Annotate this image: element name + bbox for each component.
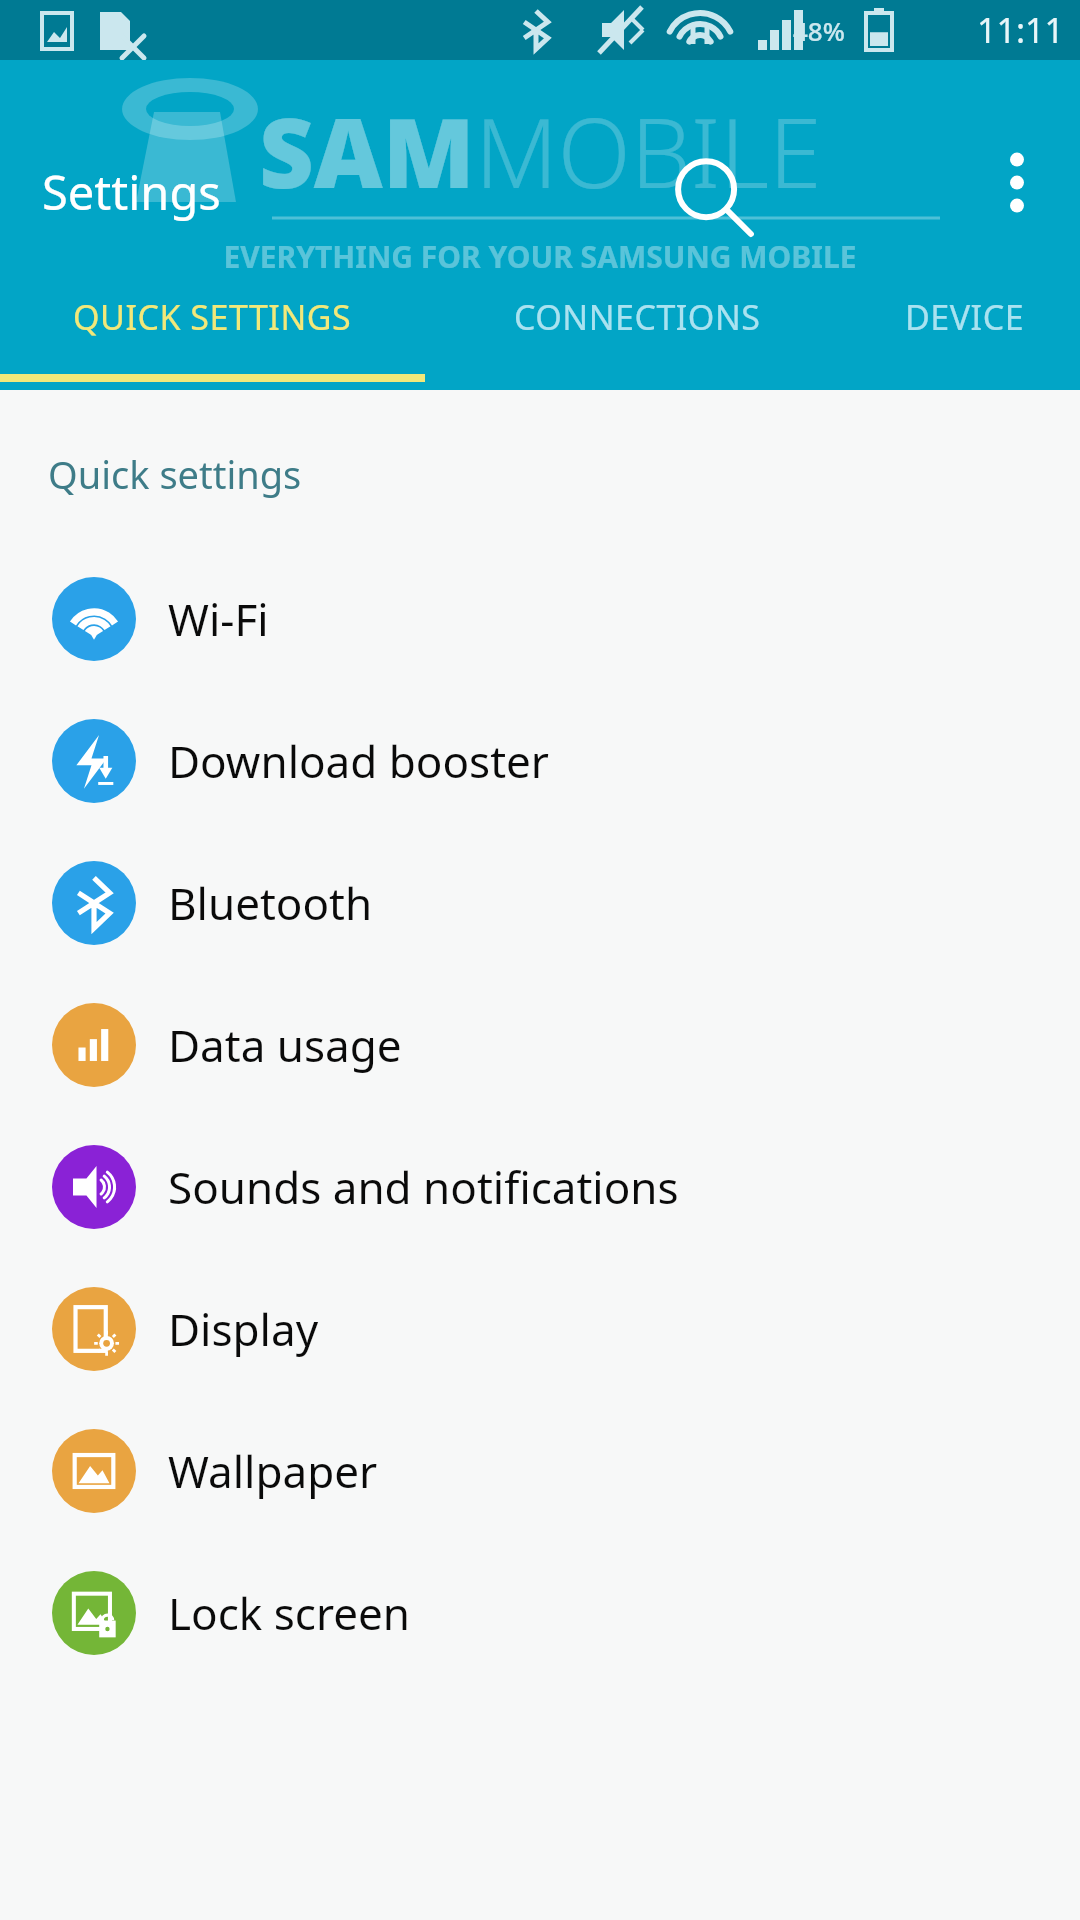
button[interactable]: Lock screen bbox=[0, 1542, 1080, 1684]
button[interactable]: Sounds and notifications bbox=[0, 1116, 1080, 1258]
button[interactable]: Search bbox=[645, 132, 775, 262]
button[interactable]: Download booster bbox=[0, 690, 1080, 832]
staticText: Sounds and notifications bbox=[168, 1157, 679, 1217]
button[interactable]: QUICK SETTINGS bbox=[0, 270, 425, 390]
button[interactable]: Bluetooth bbox=[0, 832, 1080, 974]
button[interactable]: CONNECTIONS bbox=[425, 270, 850, 390]
staticText: Wallpaper bbox=[168, 1441, 378, 1501]
staticText: Wi-Fi bbox=[168, 589, 269, 649]
staticText: 48% bbox=[793, 13, 845, 48]
button[interactable]: More options bbox=[962, 132, 1072, 242]
staticText: Download booster bbox=[168, 731, 550, 791]
staticText: Lock screen bbox=[168, 1583, 411, 1643]
button[interactable]: Data usage bbox=[0, 974, 1080, 1116]
staticText: Quick settings bbox=[48, 448, 302, 500]
button[interactable]: DEVICE bbox=[850, 270, 1080, 390]
staticText: SAM bbox=[259, 86, 475, 215]
staticText: EVERYTHING FOR YOUR SAMSUNG MOBILE bbox=[0, 236, 1080, 277]
staticText: CONNECTIONS bbox=[514, 294, 761, 340]
staticText: 11:11 bbox=[977, 7, 1064, 53]
button[interactable]: Wallpaper bbox=[0, 1400, 1080, 1542]
staticText: DEVICE bbox=[905, 294, 1025, 340]
staticText: MOBILE bbox=[475, 86, 822, 215]
staticText: Bluetooth bbox=[168, 873, 373, 933]
staticText: QUICK SETTINGS bbox=[73, 294, 352, 340]
staticText: Settings bbox=[42, 160, 221, 224]
button[interactable]: Wi-Fi bbox=[0, 548, 1080, 690]
staticText: Display bbox=[168, 1299, 319, 1359]
button[interactable]: Display bbox=[0, 1258, 1080, 1400]
staticText: Data usage bbox=[168, 1015, 402, 1075]
